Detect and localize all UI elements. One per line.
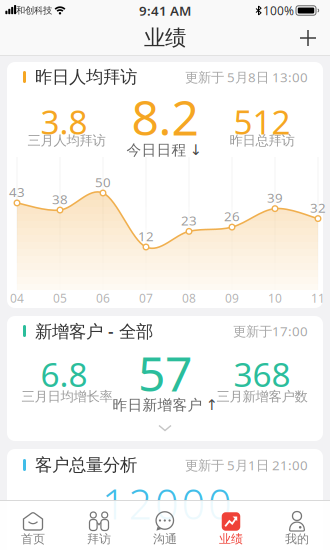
staticText: 100% <box>263 2 294 18</box>
staticText: 50 <box>95 173 111 191</box>
staticText: 09 <box>225 290 239 306</box>
button[interactable]: 业绩 <box>198 500 264 550</box>
staticText: 我的 <box>285 532 309 546</box>
staticText: 23 <box>181 211 197 229</box>
staticText: 26 <box>224 207 240 225</box>
staticText: 新增客户 - 全部 <box>35 319 153 342</box>
staticText: 43 <box>9 183 25 201</box>
staticText: 三月新增客户数 <box>216 388 307 405</box>
button[interactable]: 沟通 <box>132 500 198 550</box>
button[interactable]: 首页 <box>0 500 66 550</box>
staticText: 沟通 <box>153 532 177 546</box>
staticText: 昨日人均拜访 <box>35 66 137 88</box>
staticText: ↓ <box>189 142 201 158</box>
staticText: 昨日总拜访 <box>229 132 294 149</box>
staticText: 38 <box>52 190 68 208</box>
button[interactable]: 我的 <box>264 500 330 550</box>
staticText: 04 <box>10 290 24 306</box>
staticText: 拜访 <box>87 532 111 546</box>
staticText: 12000 <box>102 476 232 531</box>
staticText: 368 <box>233 352 290 396</box>
staticText: 32 <box>310 199 326 216</box>
button[interactable] <box>145 421 185 439</box>
staticText: ↑ <box>205 397 217 413</box>
staticText: 9:41 AM <box>139 2 191 19</box>
staticText: 首页 <box>21 532 45 546</box>
staticText: 07 <box>139 290 153 306</box>
button[interactable]: 拜访 <box>66 500 132 550</box>
staticText: 业绩 <box>144 25 186 51</box>
staticText: 3.8 <box>40 99 87 144</box>
button[interactable] <box>300 30 316 46</box>
staticText: 512 <box>233 99 290 144</box>
staticText: 三月日均增长率 <box>21 388 112 405</box>
staticText: 39 <box>267 189 283 206</box>
staticText: 昨日新增客户 <box>112 396 202 414</box>
staticText: 57 <box>138 341 192 405</box>
staticText: 12 <box>138 227 154 245</box>
staticText: 今日日程 <box>126 141 186 159</box>
staticText: 业绩 <box>219 532 243 546</box>
staticText: 08 <box>182 290 196 306</box>
staticText: 客户总量分析 <box>35 454 137 476</box>
staticText: 6.8 <box>40 352 87 396</box>
staticText: 05 <box>53 290 67 306</box>
staticText: 更新于 5月1日 21:00 <box>185 456 308 474</box>
staticText: 8.2 <box>131 85 198 149</box>
staticText: 和创科技 <box>16 5 52 16</box>
staticText: 更新于17:00 <box>233 322 308 340</box>
staticText: 11 <box>311 290 325 306</box>
staticText: 06 <box>96 290 110 306</box>
staticText: 三月人均拜访 <box>27 132 105 149</box>
staticText: 10 <box>268 290 282 306</box>
staticText: 更新于 5月8日 13:00 <box>185 68 308 86</box>
